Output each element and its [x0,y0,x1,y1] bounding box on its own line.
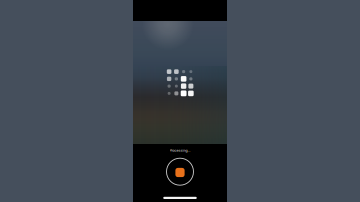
button[interactable]: Stop recording [164,156,195,187]
staticText: Processing… [169,148,190,153]
